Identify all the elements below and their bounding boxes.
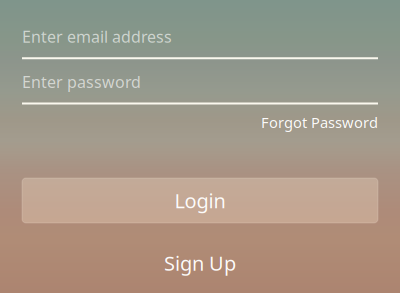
staticText: Login xyxy=(174,187,225,214)
staticText: Enter email address xyxy=(22,26,172,47)
button[interactable]: Enter password xyxy=(22,71,378,104)
button[interactable]: Enter email address xyxy=(22,26,378,59)
button[interactable]: Forgot Password xyxy=(261,112,378,132)
staticText: Enter password xyxy=(22,71,141,92)
button[interactable]: Sign Up xyxy=(22,248,378,278)
staticText: Forgot Password xyxy=(261,112,378,132)
staticText: Sign Up xyxy=(164,250,236,276)
button[interactable]: Login xyxy=(22,178,378,223)
